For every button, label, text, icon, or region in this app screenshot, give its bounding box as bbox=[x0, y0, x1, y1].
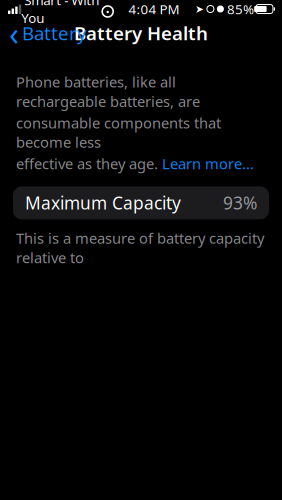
staticText: Phone batteries, like all rechargeable b… bbox=[16, 72, 200, 111]
button[interactable]: Learn more... bbox=[162, 154, 254, 173]
button[interactable]: Maximum Capacity bbox=[13, 186, 269, 219]
staticText: This is a measure of battery capacity re… bbox=[16, 228, 264, 267]
staticText: Smart - With You bbox=[21, 0, 99, 27]
staticText: Battery Health bbox=[74, 21, 208, 45]
button[interactable]: ‹ bbox=[0, 20, 93, 46]
staticText: Battery bbox=[22, 21, 87, 45]
staticText: effective as they age. bbox=[16, 154, 162, 173]
staticText: 93% bbox=[223, 191, 257, 214]
staticText: Maximum Capacity bbox=[25, 191, 181, 214]
staticText: ➤ bbox=[195, 3, 204, 15]
staticText: 85% bbox=[227, 0, 254, 18]
staticText: consumable components that become less bbox=[16, 113, 221, 152]
staticText: ‹ bbox=[9, 12, 19, 54]
staticText: 4:04 PM bbox=[129, 0, 180, 18]
staticText: Learn more... bbox=[162, 154, 254, 173]
